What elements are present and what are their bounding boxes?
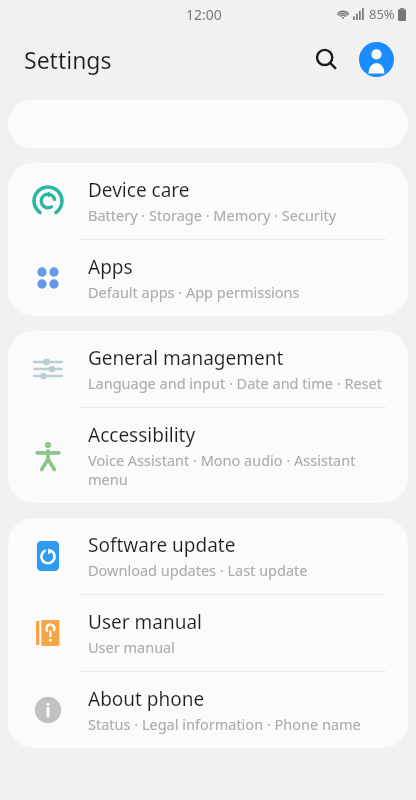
button[interactable]: Apps — [8, 240, 408, 316]
staticText: User manual — [88, 637, 175, 657]
button[interactable]: Device care — [8, 163, 408, 239]
button[interactable]: Search — [304, 37, 348, 81]
staticText: 12:00 — [186, 5, 222, 24]
staticText: General management — [88, 345, 284, 371]
staticText: About phone — [88, 686, 205, 712]
button[interactable]: Accessibility — [8, 408, 408, 503]
button[interactable]: Account — [354, 37, 398, 81]
staticText: Software update — [88, 532, 236, 558]
staticText: Default apps · App permissions — [88, 282, 300, 302]
staticText: Language and input · Date and time · Res… — [88, 373, 382, 393]
staticText: Status · Legal information · Phone name — [88, 714, 361, 734]
button[interactable]: General management — [8, 331, 408, 407]
staticText: Apps — [88, 254, 133, 280]
button[interactable]: User manual — [8, 595, 408, 671]
staticText: Accessibility — [88, 422, 196, 448]
staticText: Device care — [88, 177, 190, 203]
button[interactable]: About phone — [8, 672, 408, 748]
staticText: Battery · Storage · Memory · Security — [88, 205, 337, 225]
button[interactable]: Software update — [8, 518, 408, 594]
staticText: Voice Assistant · Mono audio · Assistant… — [88, 450, 386, 489]
staticText: 85% — [369, 5, 395, 23]
staticText: Settings — [24, 44, 112, 75]
staticText: Download updates · Last update — [88, 560, 308, 580]
staticText: User manual — [88, 609, 202, 635]
